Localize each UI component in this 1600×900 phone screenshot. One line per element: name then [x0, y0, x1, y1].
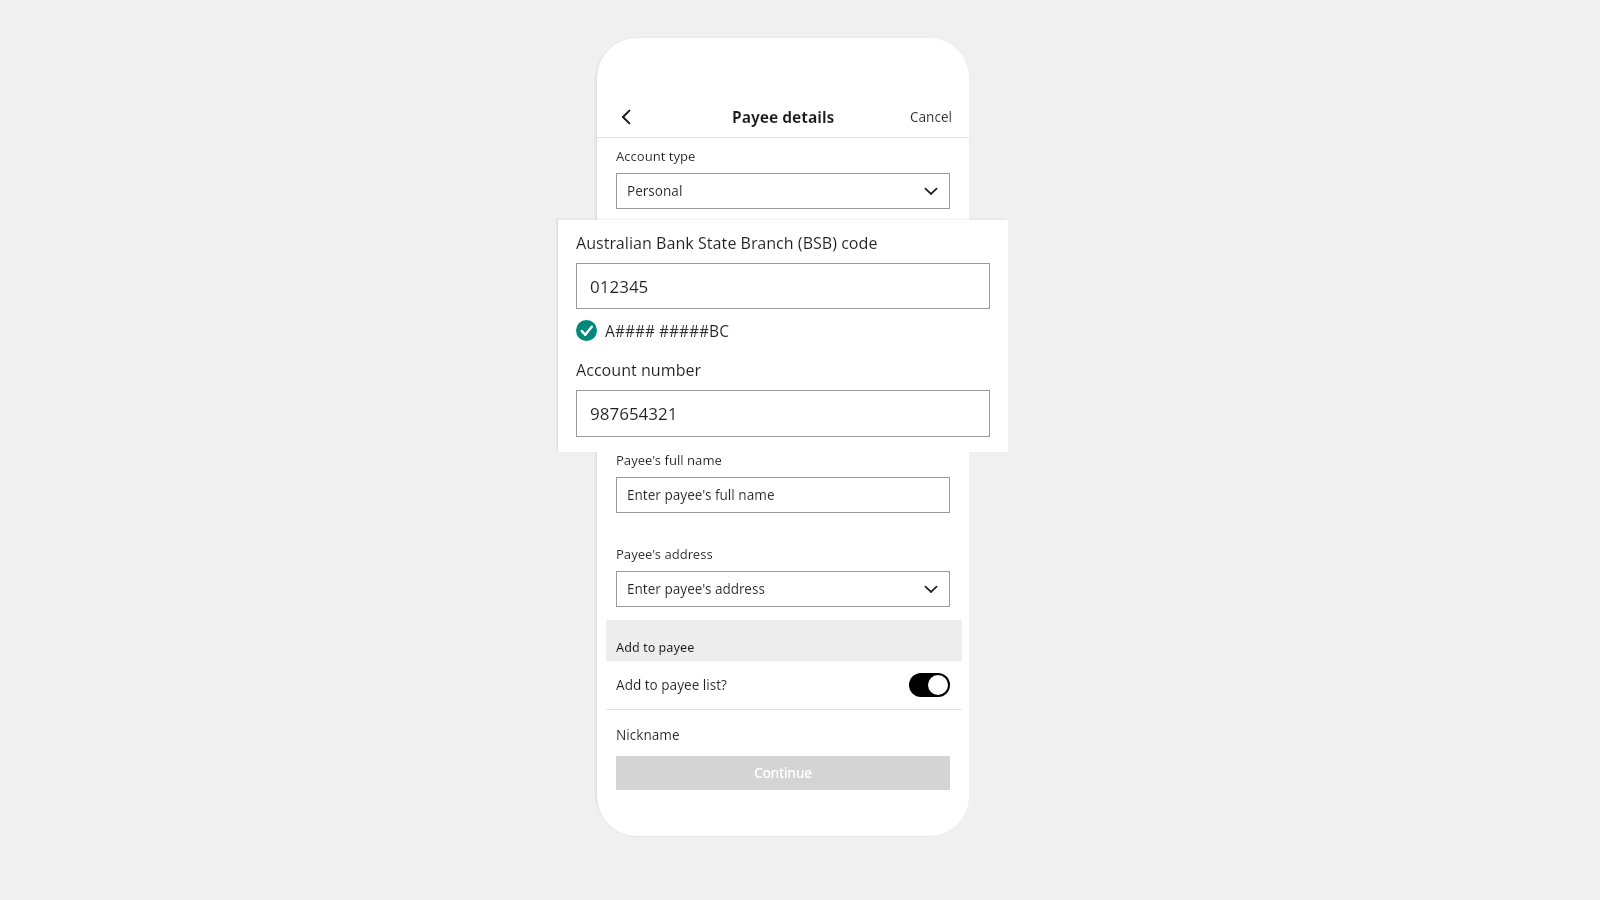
staticText: Enter payee's full name: [627, 486, 775, 504]
button[interactable]: Add to payee list?: [597, 661, 969, 709]
button[interactable]: 987654321: [576, 390, 990, 437]
button[interactable]: Enter payee's address: [616, 571, 950, 607]
staticText: Continue: [754, 764, 812, 782]
staticText: Australian Bank State Branch (BSB) code: [576, 232, 878, 254]
staticText: A#### #####BC: [605, 320, 729, 341]
button[interactable]: 012345: [576, 263, 990, 309]
staticText: Add to payee list?: [616, 676, 727, 694]
staticText: Account type: [616, 147, 696, 165]
staticText: Nickname: [616, 726, 680, 744]
button[interactable]: Personal: [616, 173, 950, 209]
button[interactable]: Cancel: [902, 100, 961, 134]
staticText: 987654321: [590, 402, 678, 425]
staticText: Cancel: [910, 108, 953, 126]
button[interactable]: Enter payee's full name: [616, 477, 950, 513]
button[interactable]: Back: [605, 96, 649, 138]
button[interactable]: Add to payee list toggle, on: [909, 673, 950, 697]
staticText: Account number: [576, 359, 702, 381]
staticText: Payee details: [732, 106, 835, 127]
staticText: Enter payee's address: [627, 580, 765, 598]
staticText: 012345: [590, 275, 649, 298]
button[interactable]: Continue: [616, 756, 950, 790]
staticText: Personal: [627, 182, 683, 200]
staticText: Payee's address: [616, 545, 713, 563]
staticText: Add to payee: [616, 639, 695, 656]
staticText: Payee's full name: [616, 451, 722, 469]
